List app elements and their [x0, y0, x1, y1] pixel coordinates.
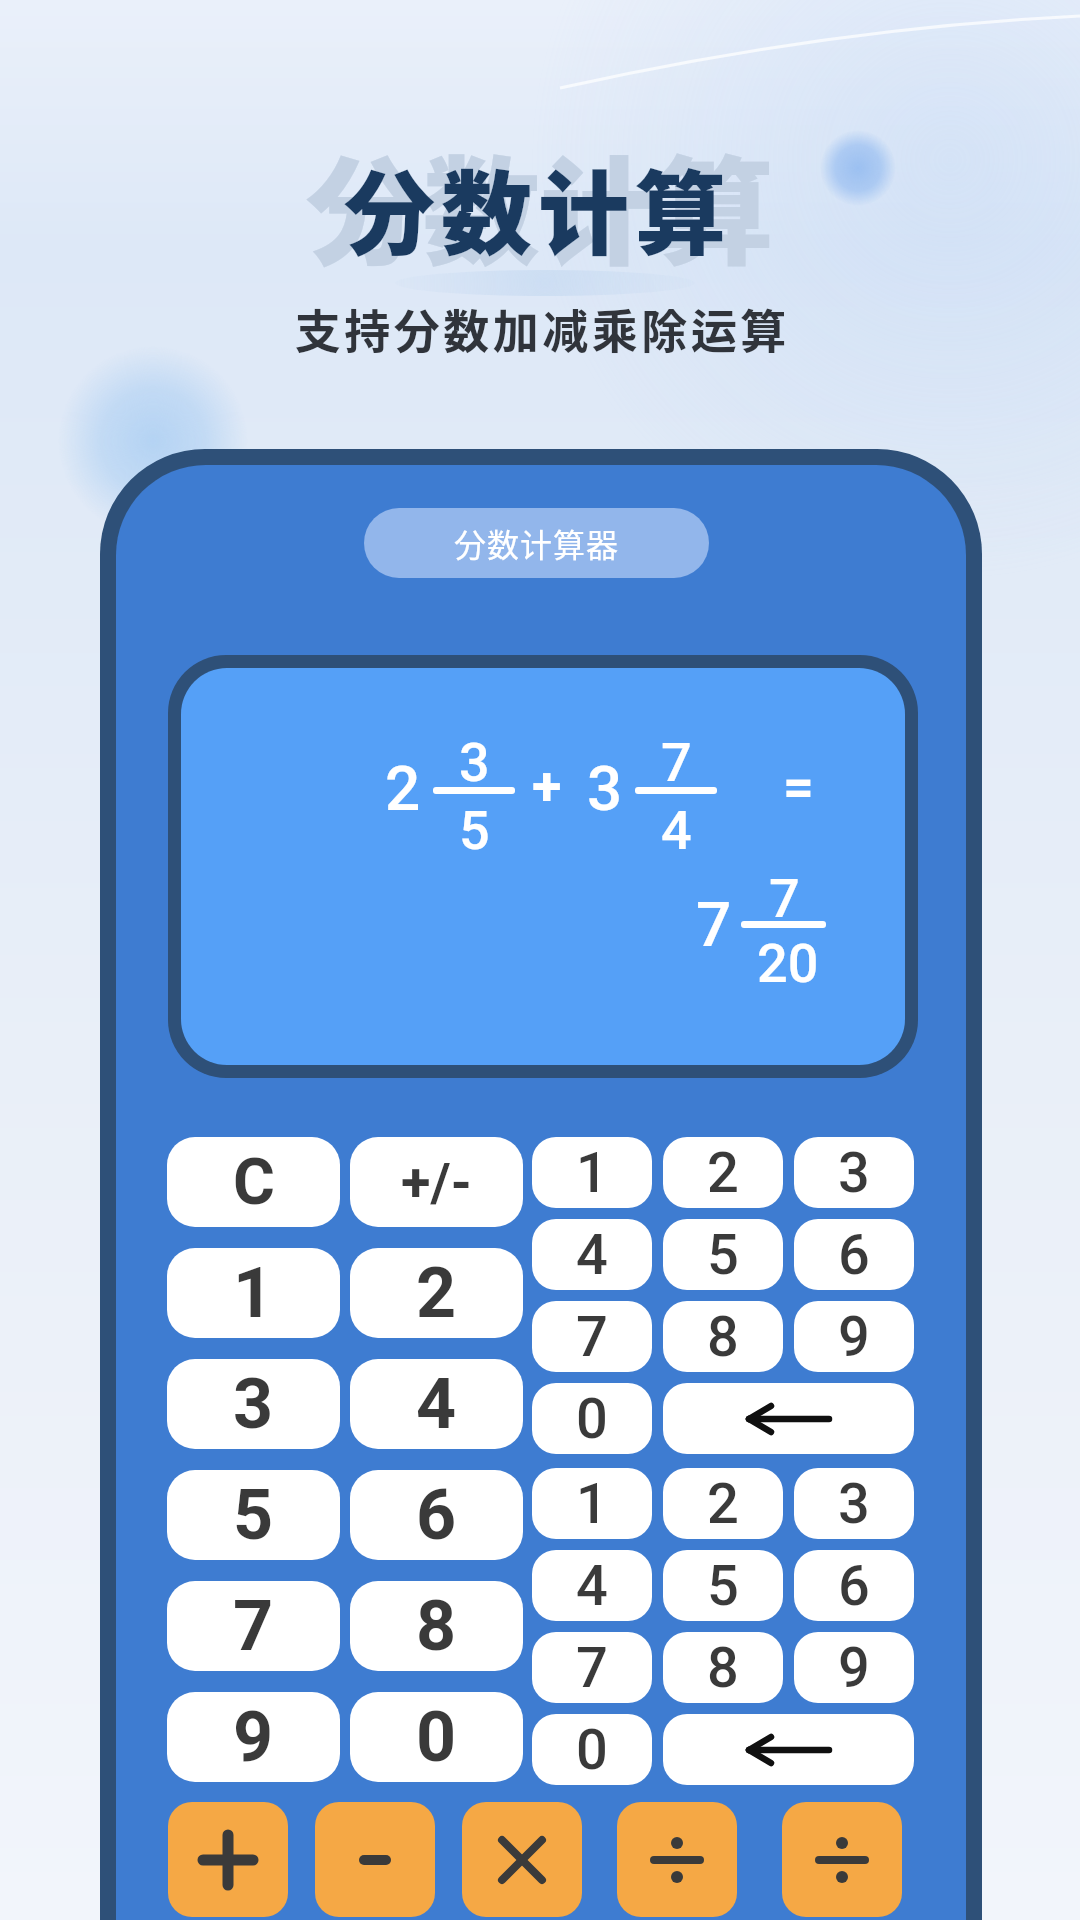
staticText: 2: [707, 1471, 739, 1537]
staticText: 2: [385, 752, 421, 825]
staticText: 0: [576, 1717, 608, 1783]
button[interactable]: 1: [532, 1468, 652, 1539]
staticText: =: [783, 755, 814, 818]
button[interactable]: [663, 1714, 914, 1785]
staticText: 3: [838, 1471, 870, 1537]
staticText: 5: [707, 1222, 739, 1288]
button[interactable]: 0: [532, 1714, 652, 1785]
button[interactable]: 2: [663, 1468, 783, 1539]
staticText: 支持分数加减乘除运算: [293, 295, 788, 362]
button[interactable]: 6: [794, 1219, 914, 1290]
button[interactable]: 8: [663, 1301, 783, 1372]
button[interactable]: 9: [794, 1301, 914, 1372]
staticText: 7: [661, 731, 692, 794]
button[interactable]: [782, 1802, 902, 1917]
button[interactable]: [315, 1802, 435, 1917]
staticText: +/-: [401, 1151, 472, 1214]
staticText: 3: [459, 731, 490, 794]
staticText: 4: [576, 1553, 608, 1619]
button[interactable]: 5: [663, 1219, 783, 1290]
staticText: 3: [587, 752, 623, 825]
staticText: 6: [838, 1222, 870, 1288]
staticText: 8: [707, 1635, 739, 1701]
button[interactable]: 7: [167, 1581, 340, 1671]
staticText: 分数计算器: [454, 520, 620, 566]
staticText: 20: [757, 932, 819, 995]
staticText: 8: [416, 1585, 457, 1667]
staticText: 7: [769, 867, 800, 930]
button[interactable]: 3: [167, 1359, 340, 1449]
staticText: 1: [576, 1140, 608, 1206]
staticText: 6: [838, 1553, 870, 1619]
staticText: 7: [576, 1304, 608, 1370]
button[interactable]: 8: [350, 1581, 523, 1671]
staticText: 5: [707, 1553, 739, 1619]
staticText: 0: [576, 1386, 608, 1452]
staticText: 3: [233, 1363, 274, 1445]
staticText: 9: [838, 1635, 870, 1701]
staticText: 3: [838, 1140, 870, 1206]
staticText: 2: [416, 1252, 457, 1334]
staticText: 分数计算: [344, 141, 733, 273]
button[interactable]: 1: [532, 1137, 652, 1208]
staticText: 4: [661, 799, 692, 862]
button[interactable]: 8: [663, 1632, 783, 1703]
staticText: 7: [696, 888, 732, 961]
staticText: 7: [233, 1585, 274, 1667]
button[interactable]: [462, 1802, 582, 1917]
button[interactable]: 0: [532, 1383, 652, 1454]
button[interactable]: 5: [167, 1470, 340, 1560]
button[interactable]: 9: [794, 1632, 914, 1703]
staticText: 1: [233, 1252, 274, 1334]
button[interactable]: 3: [794, 1468, 914, 1539]
staticText: +: [532, 755, 562, 818]
button[interactable]: 6: [794, 1550, 914, 1621]
button[interactable]: [168, 1802, 288, 1917]
button[interactable]: C: [167, 1137, 340, 1227]
staticText: 1: [576, 1471, 608, 1537]
staticText: 9: [838, 1304, 870, 1370]
button[interactable]: 4: [350, 1359, 523, 1449]
button[interactable]: 6: [350, 1470, 523, 1560]
button[interactable]: 2: [350, 1248, 523, 1338]
staticText: 分数计算: [306, 119, 775, 288]
button[interactable]: 4: [532, 1550, 652, 1621]
button[interactable]: 7: [532, 1632, 652, 1703]
staticText: 7: [576, 1635, 608, 1701]
button[interactable]: 4: [532, 1219, 652, 1290]
button[interactable]: 分数计算器: [364, 508, 709, 578]
button[interactable]: 3: [794, 1137, 914, 1208]
button[interactable]: 5: [663, 1550, 783, 1621]
staticText: 6: [416, 1474, 457, 1556]
staticText: 9: [233, 1696, 274, 1778]
staticText: 8: [707, 1304, 739, 1370]
staticText: C: [233, 1145, 275, 1220]
button[interactable]: 9: [167, 1692, 340, 1782]
staticText: 0: [416, 1696, 457, 1778]
staticText: 5: [233, 1474, 274, 1556]
button[interactable]: [663, 1383, 914, 1454]
staticText: 4: [416, 1363, 457, 1445]
button[interactable]: [617, 1802, 737, 1917]
staticText: 4: [576, 1222, 608, 1288]
button[interactable]: 2: [663, 1137, 783, 1208]
staticText: 2: [707, 1140, 739, 1206]
button[interactable]: 1: [167, 1248, 340, 1338]
button[interactable]: +/-: [350, 1137, 523, 1227]
button[interactable]: 7: [532, 1301, 652, 1372]
button[interactable]: 0: [350, 1692, 523, 1782]
staticText: 5: [459, 799, 490, 862]
